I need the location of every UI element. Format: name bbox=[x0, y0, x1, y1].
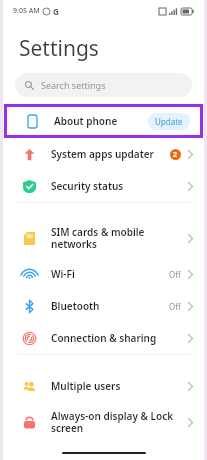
staticText: 2 bbox=[173, 150, 178, 160]
staticText: Update bbox=[155, 116, 183, 127]
button[interactable]: Wi-Fi bbox=[3, 258, 204, 290]
button[interactable]: Update bbox=[155, 116, 183, 127]
button[interactable]: Search settings bbox=[15, 73, 192, 97]
staticText: Wi-Fi bbox=[51, 267, 169, 281]
staticText: G bbox=[53, 6, 59, 17]
staticText: Always-on display & Lock screen bbox=[51, 409, 188, 435]
staticText: 9:05 AM bbox=[13, 6, 40, 16]
button[interactable]: Connection & sharing bbox=[3, 322, 204, 354]
button[interactable]: About phone bbox=[7, 107, 200, 135]
button[interactable]: SIM cards & mobile networks bbox=[3, 218, 204, 258]
staticText: System apps updater bbox=[51, 147, 170, 161]
staticText: Security status bbox=[51, 179, 188, 193]
staticText: Bluetooth bbox=[51, 299, 169, 313]
staticText: Search settings bbox=[41, 79, 106, 91]
staticText: Off bbox=[169, 301, 181, 312]
staticText: Off bbox=[169, 269, 181, 280]
button[interactable]: Always-on display & Lock screen bbox=[3, 402, 204, 442]
button[interactable]: System apps updater bbox=[3, 138, 204, 170]
button[interactable]: Multiple users bbox=[3, 370, 204, 402]
button[interactable]: Bluetooth bbox=[3, 290, 204, 322]
button[interactable]: Security status bbox=[3, 170, 204, 202]
staticText: Settings bbox=[19, 34, 99, 63]
staticText: Connection & sharing bbox=[51, 331, 188, 345]
staticText: SIM cards & mobile networks bbox=[51, 225, 188, 251]
staticText: About phone bbox=[54, 114, 118, 128]
staticText: Multiple users bbox=[51, 379, 188, 393]
